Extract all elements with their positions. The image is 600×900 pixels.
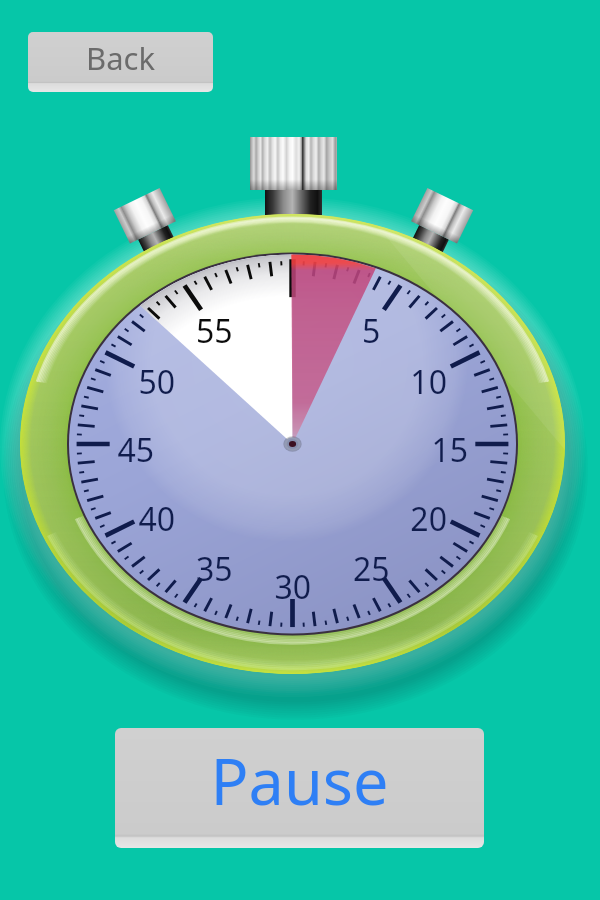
button[interactable]: Pause	[115, 728, 484, 848]
staticText: Pause	[210, 738, 389, 824]
button[interactable]: Back	[28, 32, 213, 92]
staticText: Back	[86, 37, 155, 79]
